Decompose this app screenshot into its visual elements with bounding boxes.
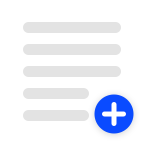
button[interactable]: Add (94, 94, 133, 133)
